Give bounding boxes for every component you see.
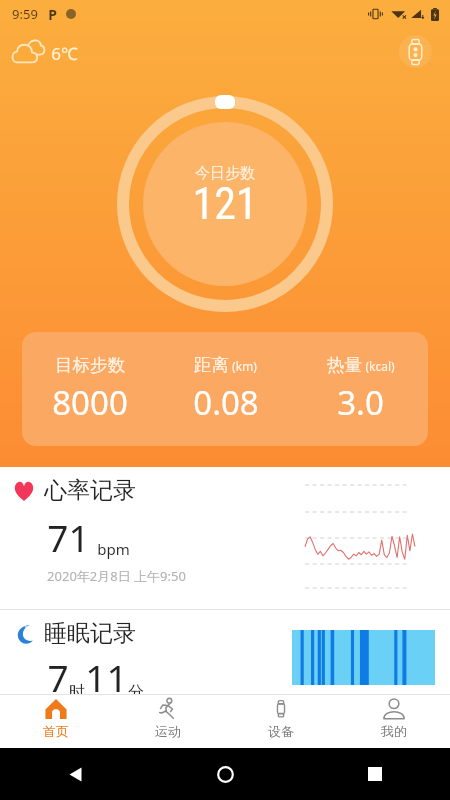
button[interactable]: Home [150, 748, 300, 800]
button[interactable]: 我的 [337, 695, 450, 739]
button[interactable]: 目标步数 [22, 332, 428, 446]
button[interactable]: My device [399, 35, 432, 68]
button[interactable]: 设备 [224, 695, 337, 739]
staticText: 目标步数 [55, 354, 125, 376]
staticText: 3.0 [337, 380, 384, 425]
staticText: 0.08 [193, 380, 259, 425]
button[interactable]: Recent apps [300, 748, 450, 800]
staticText: 2020年2月8日 上午9:50 [47, 567, 186, 585]
staticText: 分 [128, 682, 144, 702]
button[interactable]: 6℃ [7, 32, 82, 70]
button[interactable]: 首页 [0, 695, 112, 739]
button[interactable]: Back [0, 748, 150, 800]
staticText: 心率记录 [44, 476, 136, 505]
staticText: 我的 [381, 723, 407, 739]
staticText: 7 [47, 652, 69, 702]
staticText: P [48, 5, 57, 24]
staticText: (kcal) [365, 358, 395, 374]
staticText: 11 [85, 652, 128, 702]
staticText: 热量 [327, 354, 362, 376]
staticText: 121 [192, 178, 258, 230]
staticText: (km) [232, 358, 257, 374]
staticText: 设备 [268, 723, 294, 739]
staticText: 时 [69, 682, 85, 702]
button[interactable]: 运动 [112, 695, 224, 739]
button[interactable]: 心率记录 [0, 467, 450, 609]
staticText: 睡眠记录 [44, 619, 136, 648]
staticText: 首页 [43, 723, 69, 739]
staticText: 71 [47, 512, 90, 562]
staticText: 距离 [194, 354, 229, 376]
staticText: 6℃ [51, 42, 78, 65]
button[interactable]: 睡眠记录 [0, 610, 450, 696]
staticText: 今日步数 [195, 164, 255, 183]
staticText: 8000 [52, 380, 128, 425]
staticText: 9:59 [12, 5, 38, 23]
staticText: 运动 [155, 723, 181, 739]
staticText: bpm [97, 539, 130, 559]
